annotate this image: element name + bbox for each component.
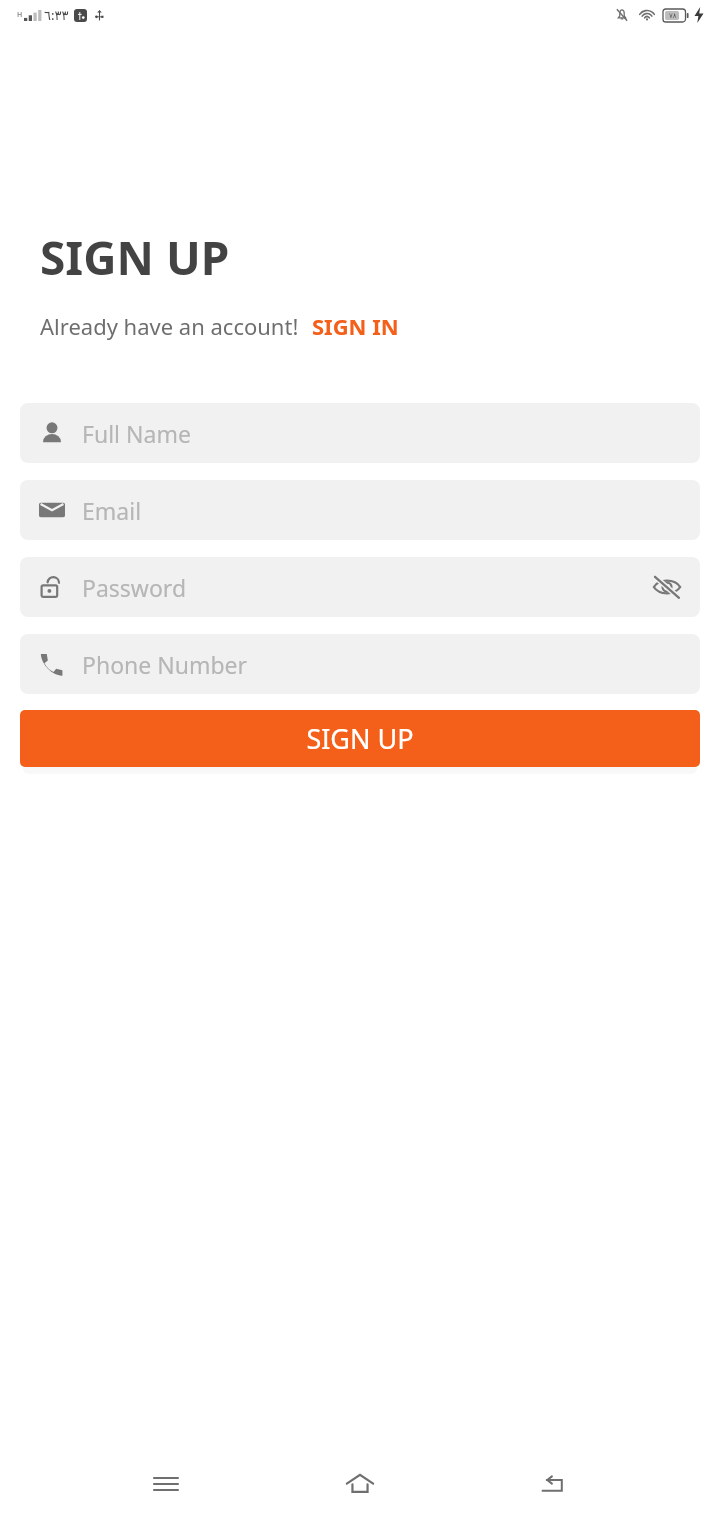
staticText: Phone Number — [82, 649, 684, 680]
button[interactable]: Show password — [650, 570, 684, 604]
staticText: SIGN IN — [312, 311, 399, 341]
button[interactable]: Home — [332, 1456, 388, 1512]
button[interactable]: Full Name — [20, 403, 700, 463]
staticText: Already have an account! — [40, 311, 299, 341]
staticText: Password — [82, 572, 650, 603]
staticText: ٦:٣٣ — [44, 6, 69, 24]
button[interactable]: Recent apps — [138, 1456, 194, 1512]
button[interactable]: Email — [20, 480, 700, 540]
button[interactable]: Phone Number — [20, 634, 700, 694]
staticText: H — [17, 10, 23, 20]
staticText: SIGN UP — [306, 720, 414, 757]
button[interactable]: SIGN IN — [312, 311, 399, 341]
button[interactable]: Back — [526, 1456, 582, 1512]
button[interactable]: Password — [20, 557, 700, 617]
staticText: SIGN UP — [40, 226, 230, 289]
staticText: ٧٨ — [669, 12, 677, 20]
button[interactable]: SIGN UP — [20, 710, 700, 767]
staticText: Email — [82, 495, 684, 526]
staticText: Full Name — [82, 418, 684, 449]
